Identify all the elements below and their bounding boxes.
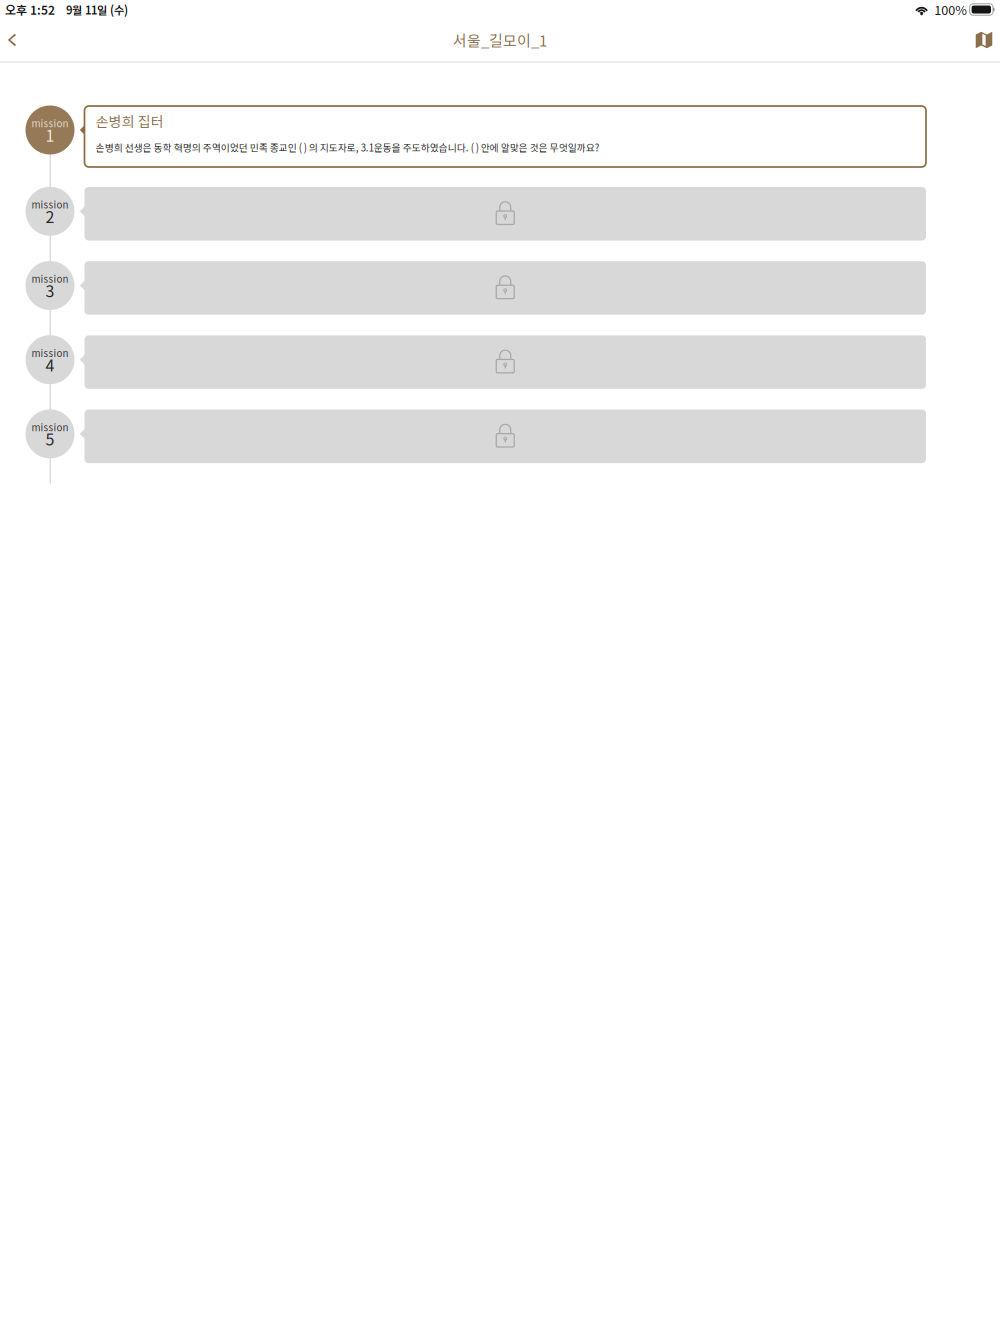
staticText: mission — [31, 420, 68, 434]
staticText: 100% — [934, 0, 967, 19]
button[interactable]: 손병희 집터 — [84, 106, 926, 167]
staticText: 1 — [45, 123, 54, 146]
staticText: 서울_길모이_1 — [453, 29, 547, 51]
staticText: mission — [31, 116, 68, 130]
button[interactable] — [84, 335, 926, 389]
button[interactable] — [84, 261, 926, 315]
staticText: 손병희 집터 — [96, 111, 164, 131]
staticText: 5 — [45, 427, 54, 450]
staticText: 4 — [45, 353, 54, 376]
button[interactable]: Back — [0, 22, 30, 58]
staticText: 손병희 선생은 동학 혁명의 주역이었던 민족 종교인 ( ) 의 지도자로, … — [96, 140, 600, 154]
staticText: mission — [31, 346, 68, 360]
staticText: 2 — [45, 204, 54, 228]
staticText: 3 — [45, 279, 54, 302]
staticText: mission — [31, 271, 68, 286]
staticText: 오후 1:52 — [5, 1, 55, 18]
staticText: 9월 11일 (수) — [66, 1, 128, 18]
staticText: mission — [31, 197, 68, 211]
button[interactable]: Map — [966, 22, 1000, 58]
